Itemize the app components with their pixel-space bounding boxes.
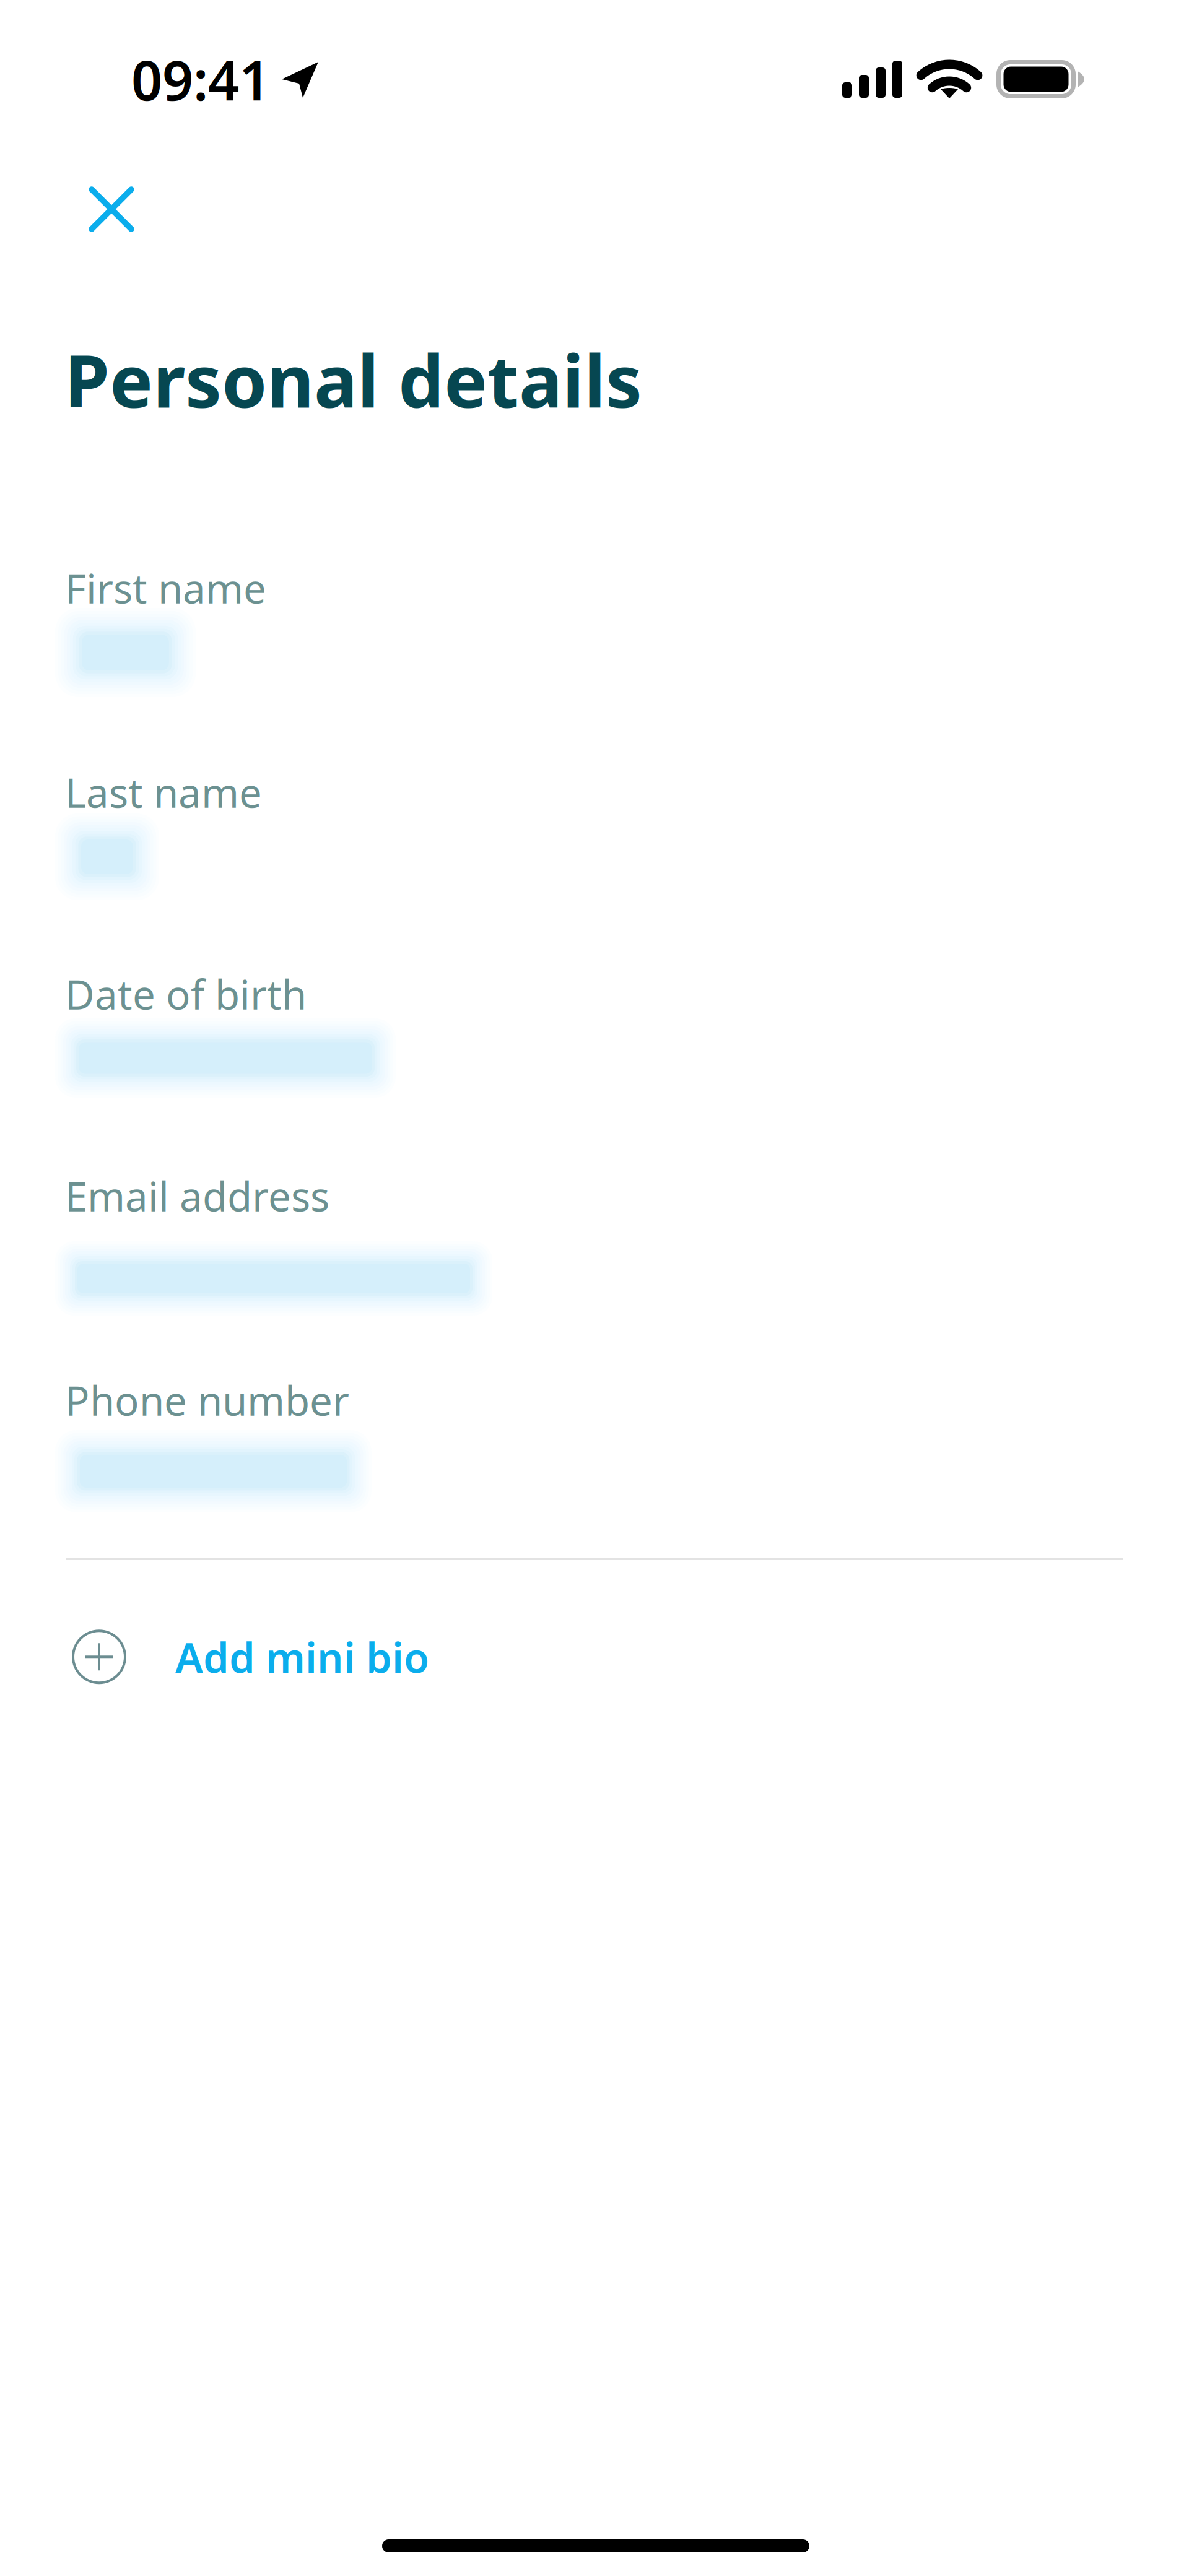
staticText: 09:41 bbox=[131, 43, 270, 115]
button[interactable]: Add mini bio bbox=[0, 1605, 1189, 1709]
staticText: Date of birth bbox=[65, 967, 307, 1021]
staticText: Email address bbox=[65, 1169, 329, 1223]
button[interactable]: Close bbox=[0, 162, 178, 257]
staticText: Last name bbox=[65, 765, 262, 819]
staticText: Add mini bio bbox=[175, 1629, 429, 1684]
staticText: First name bbox=[65, 561, 266, 615]
staticText: Personal details bbox=[64, 331, 642, 428]
staticText: Phone number bbox=[65, 1373, 349, 1427]
